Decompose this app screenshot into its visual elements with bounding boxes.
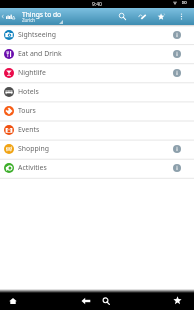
button[interactable]: Bookmarks — [168, 291, 187, 310]
button[interactable]: Search — [113, 8, 131, 25]
staticText: Shopping — [18, 144, 49, 153]
button[interactable]: Shopping — [0, 139, 194, 158]
button[interactable]: More options — [172, 8, 191, 25]
button[interactable]: Back — [76, 291, 95, 310]
button[interactable]: Search — [96, 291, 115, 310]
button[interactable]: Eat and Drink — [0, 44, 194, 63]
button[interactable]: Hotels — [0, 82, 194, 101]
button[interactable]: Events — [0, 120, 194, 139]
button[interactable]: Home — [3, 291, 22, 310]
staticText: Sightseeing — [18, 30, 56, 39]
staticText: Zurich — [22, 17, 35, 23]
button[interactable]: Navigate up — [0, 8, 19, 25]
staticText: Hotels — [18, 87, 39, 96]
staticText: Tours — [18, 106, 36, 115]
button[interactable]: Things to do — [21, 8, 65, 25]
button[interactable]: Info — [170, 28, 184, 42]
button[interactable]: Tours — [0, 101, 194, 120]
button[interactable]: Activities — [0, 158, 194, 177]
staticText: Activities — [18, 163, 47, 172]
button[interactable]: Sightseeing — [0, 25, 194, 44]
button[interactable]: Nightlife — [0, 63, 194, 82]
staticText: 9:40 — [92, 1, 102, 8]
button[interactable]: Info — [170, 161, 184, 175]
button[interactable]: Info — [170, 142, 184, 156]
staticText: Nightlife — [18, 68, 46, 77]
button[interactable]: Info — [170, 66, 184, 80]
staticText: Things to do — [22, 10, 62, 19]
button[interactable]: Info — [170, 47, 184, 61]
staticText: Eat and Drink — [18, 49, 62, 58]
button[interactable]: Edit — [133, 8, 152, 25]
button[interactable]: Favorite — [152, 8, 170, 25]
staticText: Events — [18, 125, 40, 134]
